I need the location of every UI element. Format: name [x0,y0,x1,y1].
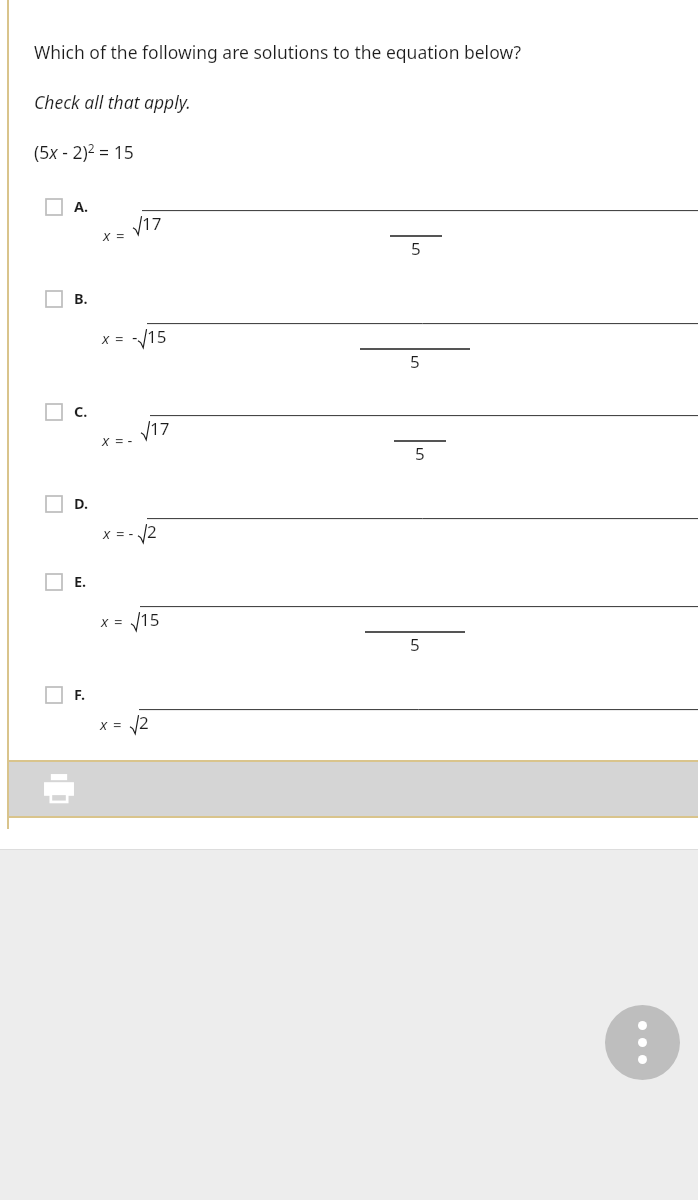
staticText: 2 [139,711,149,734]
staticText: 15 [147,325,167,348]
staticText: A. [74,196,89,216]
staticText: 5 [415,442,425,465]
staticText: Which of the following are solutions to … [34,40,522,64]
staticText: x [102,430,110,450]
staticText: = [113,714,122,734]
staticText: 5 [411,237,421,260]
staticText: Check all that apply. [34,90,191,114]
staticText: x [103,225,111,245]
staticText: 17 [150,417,170,440]
staticText: x [102,328,110,348]
staticText: x [103,523,111,543]
staticText: (5x - 2)2 = 15 [34,140,134,164]
staticText: 15 [140,608,160,631]
button[interactable]: E. [0,543,698,656]
staticText: = [116,225,125,245]
staticText: B. [74,288,88,308]
staticText: E. [74,571,87,591]
staticText: 5 [410,633,420,656]
button[interactable]: A. [0,164,698,260]
button[interactable]: F. [0,656,698,734]
staticText: 17 [142,212,162,235]
button[interactable]: D. [0,465,698,543]
button[interactable]: B. [0,260,698,373]
staticText: = [114,611,123,631]
staticText: D. [74,493,89,513]
staticText: 5 [410,350,420,373]
staticText: 2 [147,520,157,543]
staticText: F. [74,684,86,704]
staticText: C. [74,401,88,421]
button[interactable]: Print [31,762,87,816]
staticText: = - [115,430,133,450]
button[interactable]: More options [605,1005,680,1080]
staticText: = [115,328,124,348]
staticText: - [132,325,138,348]
staticText: x [100,714,108,734]
staticText: x [101,611,109,631]
staticText: = - [116,523,134,543]
button[interactable]: C. [0,373,698,465]
